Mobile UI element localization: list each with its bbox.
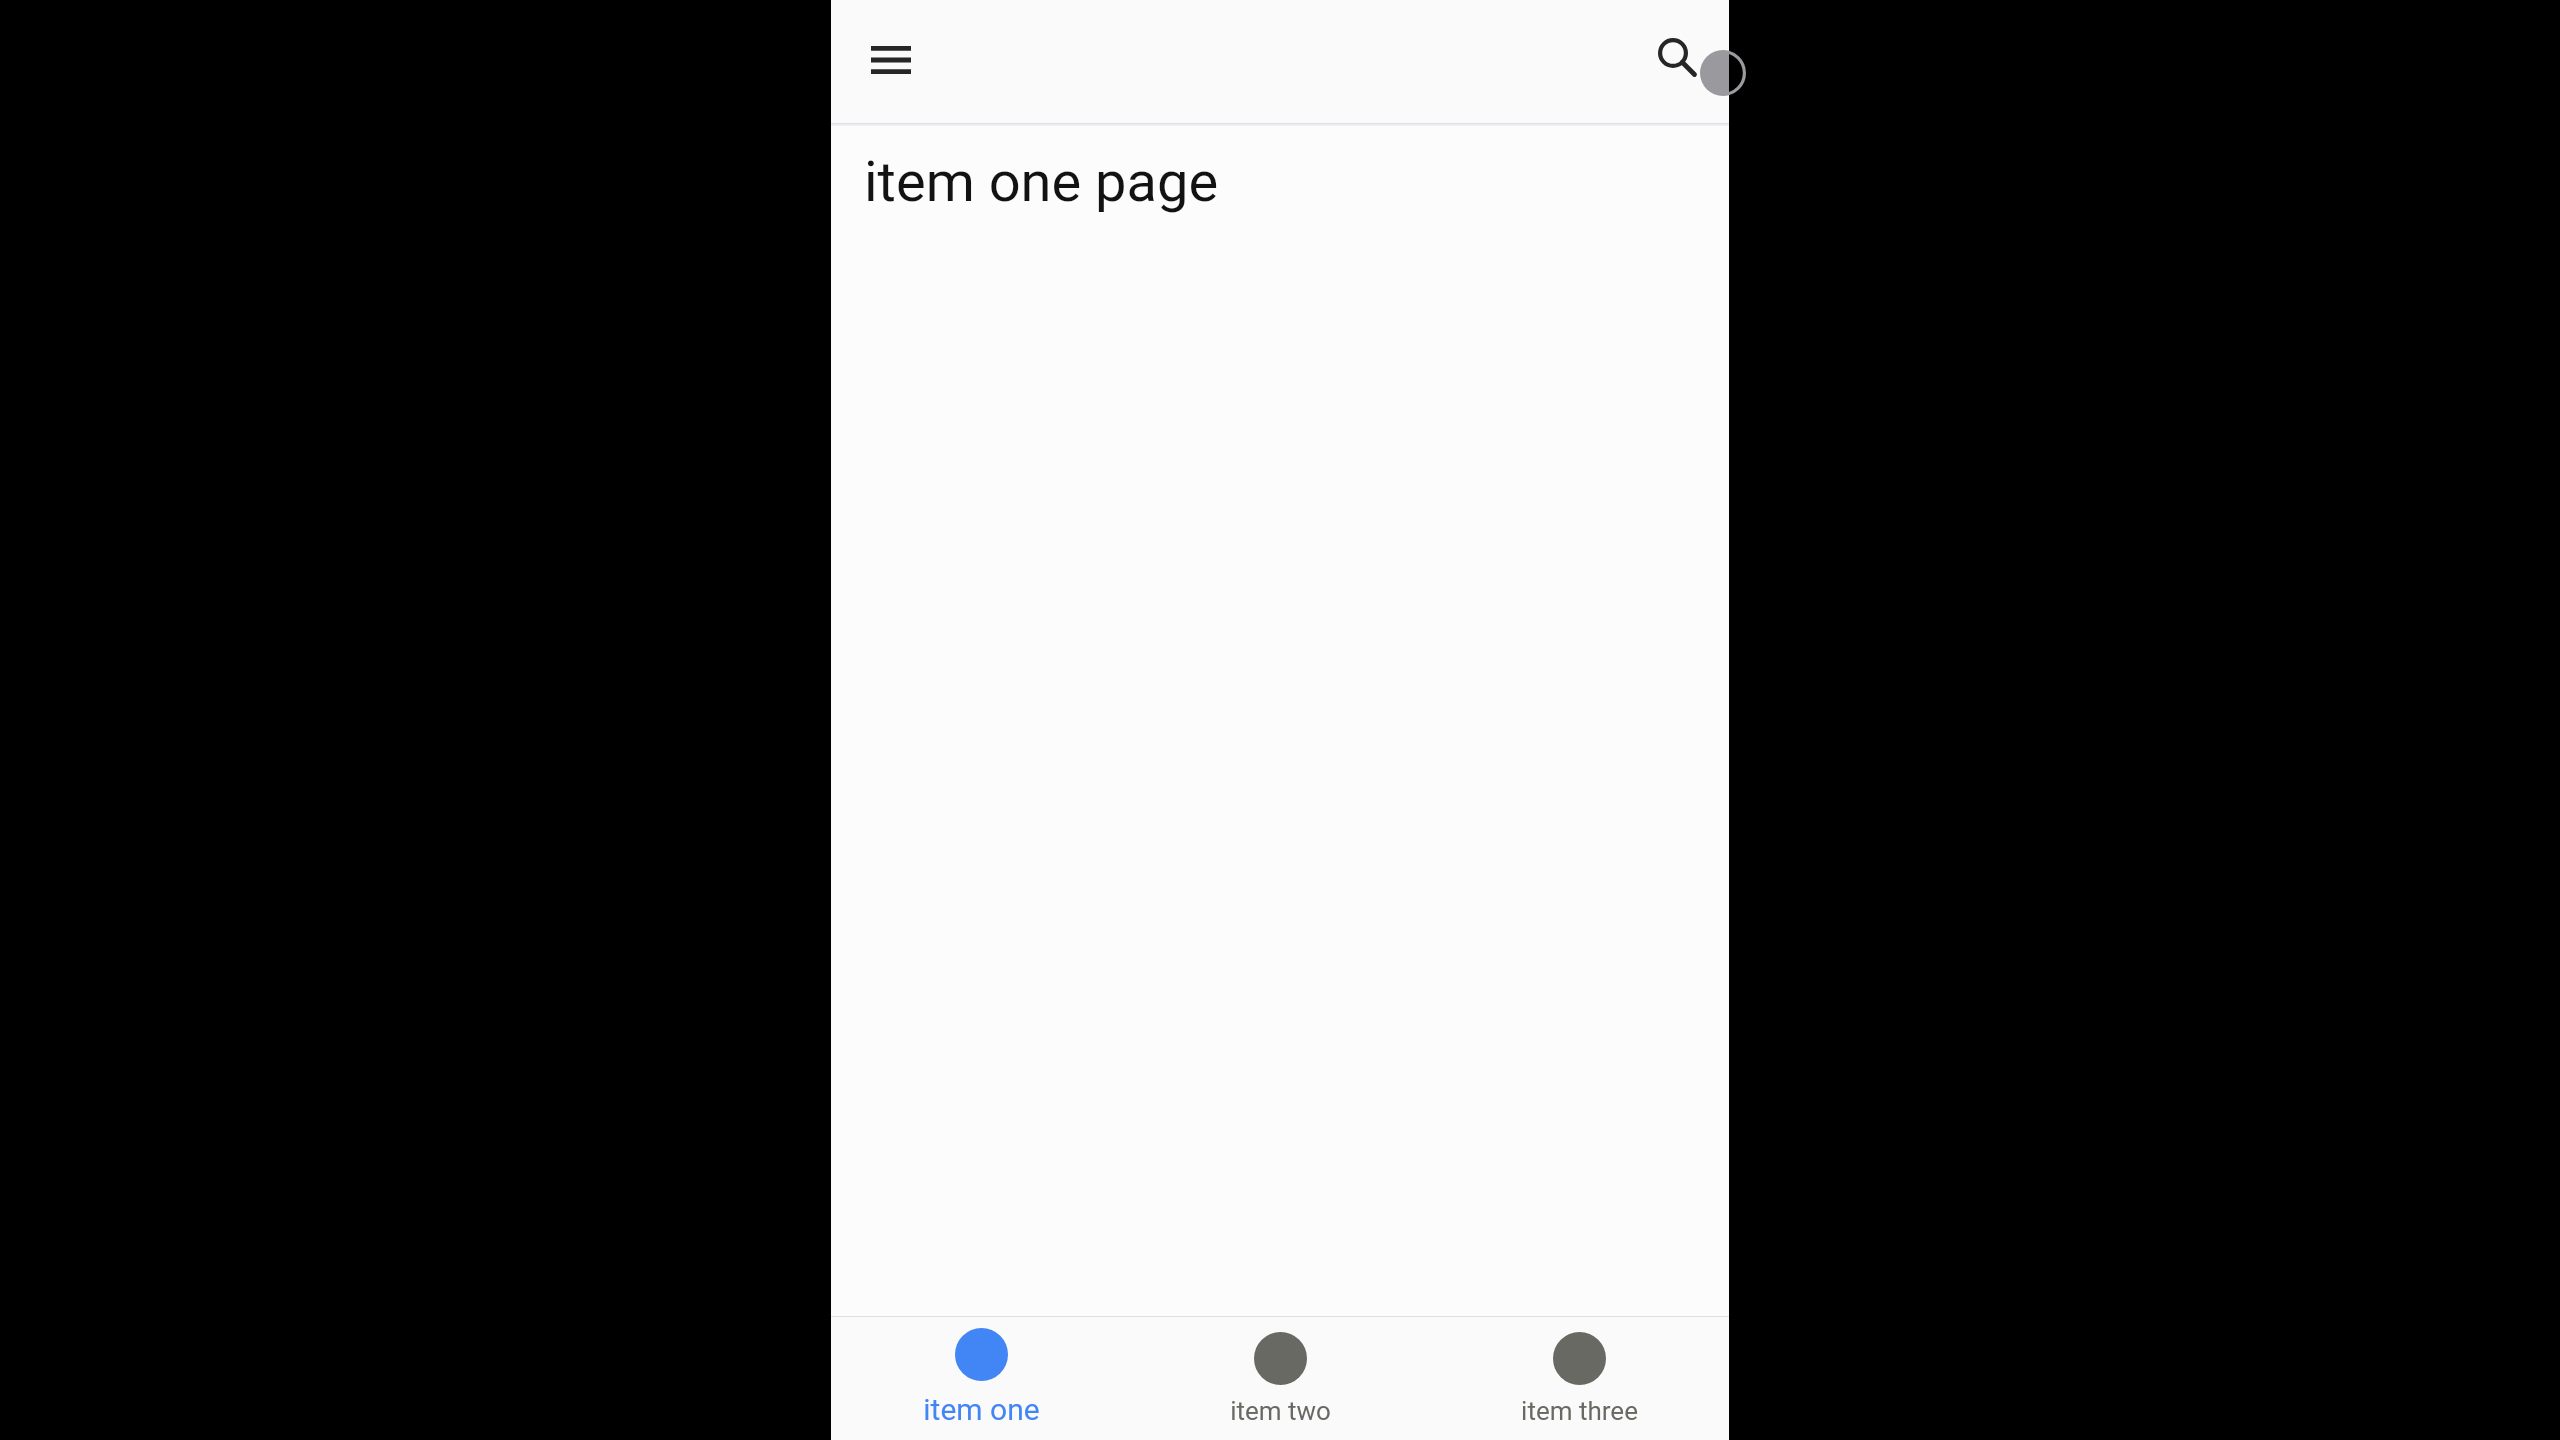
staticText: item one page — [864, 149, 1219, 215]
staticText: item three — [1521, 1396, 1638, 1426]
button[interactable]: item two — [1131, 1317, 1430, 1440]
button[interactable]: item one — [831, 1317, 1131, 1440]
button[interactable]: Account — [1700, 50, 1746, 96]
button[interactable]: Menu — [863, 32, 919, 88]
button[interactable]: item three — [1430, 1317, 1729, 1440]
button[interactable]: Search — [1658, 37, 1710, 89]
staticText: item one — [923, 1392, 1040, 1427]
staticText: item two — [1230, 1396, 1331, 1426]
